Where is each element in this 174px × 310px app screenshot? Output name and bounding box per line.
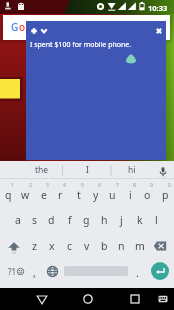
staticText: f [68,213,72,227]
button[interactable]: . [129,261,146,285]
staticText: 5 [81,182,84,189]
button[interactable]: p [157,183,174,207]
button[interactable]: e [35,183,52,207]
staticText: G [11,20,19,34]
staticText: 10:33 [148,3,168,13]
staticText: s [32,213,38,227]
button[interactable]: Shift [5,235,22,259]
staticText: j [120,213,123,227]
staticText: g [33,20,40,34]
button[interactable]: n [113,234,130,258]
staticText: o [19,20,26,34]
button[interactable]: r [52,183,69,207]
button[interactable]: s [26,208,43,232]
button[interactable]: b [96,234,113,258]
staticText: q [5,188,12,202]
staticText: hi [128,164,136,176]
staticText: . [136,266,139,280]
staticText: o [144,188,151,202]
staticText: c [67,239,73,253]
button[interactable]: m [131,234,148,258]
staticText: the [35,164,49,176]
staticText: m [135,239,145,253]
staticText: e [41,188,47,202]
staticText: b [101,239,108,253]
button[interactable]: Backspace [151,234,168,258]
staticText: n [118,239,125,253]
staticText: 0 [168,182,171,189]
staticText: 9 [150,182,153,189]
staticText: a [15,213,21,227]
staticText: i [129,188,132,202]
button[interactable]: w [17,183,34,207]
button[interactable]: the [20,161,63,179]
button[interactable]: I [63,161,112,179]
staticText: 7 [116,182,119,189]
button[interactable]: d [43,208,60,232]
button[interactable]: j [113,208,130,232]
staticText: 8 [133,182,136,189]
button[interactable]: Enter [151,262,169,280]
button[interactable]: g [78,208,95,232]
button[interactable]: t [70,183,87,207]
staticText: z [32,239,37,253]
staticText: x [49,239,55,253]
staticText: 2 [29,182,32,189]
staticText: I spent $100 for mobile phone. [30,40,132,50]
staticText: v [84,239,90,253]
button[interactable]: Recents [125,289,145,309]
button[interactable]: q [0,183,17,207]
staticText: ?1 [8,266,17,277]
staticText: k [137,213,143,227]
button[interactable]: c [61,234,78,258]
button[interactable]: k [131,208,148,232]
staticText: d [48,213,55,227]
button[interactable]: z [26,234,43,258]
staticText: p [162,188,169,202]
button[interactable]: l [148,208,165,232]
staticText: 6 [98,182,101,189]
button[interactable]: v [78,234,95,258]
staticText: w [21,188,30,202]
staticText: , [33,266,36,280]
staticText: o [26,20,33,34]
staticText: 1 [11,182,14,189]
button[interactable]: u [104,183,121,207]
staticText: l [155,213,158,227]
staticText: h [101,213,108,227]
button[interactable]: Switch keyboard [153,289,173,309]
button[interactable]: Change language [44,259,61,283]
button[interactable]: h [96,208,113,232]
staticText: u [109,188,116,202]
staticText: y [93,188,99,202]
staticText: t [77,188,81,202]
staticText: g [83,213,90,227]
button[interactable]: i [122,183,139,207]
button[interactable]: Close [153,25,165,37]
staticText: 3 [46,182,49,189]
button[interactable]: ?1 [6,262,26,280]
staticText: 4 [63,182,66,189]
staticText: I [86,164,89,176]
button[interactable]: x [43,234,60,258]
button[interactable]: More options [38,25,50,37]
button[interactable]: , [26,261,43,285]
staticText: r [58,188,63,202]
button[interactable]: Voice input [154,162,171,179]
button[interactable]: y [87,183,104,207]
button[interactable]: f [61,208,78,232]
button[interactable]: Back [32,289,52,309]
button[interactable]: hi [111,161,152,179]
button[interactable]: Search [3,15,170,40]
button[interactable]: Add [28,25,40,37]
button[interactable]: Home [78,289,98,309]
button[interactable]: o [139,183,156,207]
staticText: e [43,20,49,34]
button[interactable]: a [9,208,26,232]
staticText: l [40,20,43,34]
